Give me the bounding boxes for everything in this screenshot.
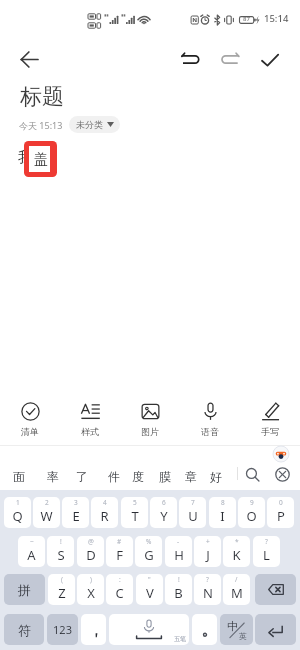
staticText: : — [119, 575, 121, 584]
staticText: D — [86, 546, 96, 564]
button[interactable]: ? — [194, 574, 221, 605]
staticText: @ — [88, 537, 94, 546]
button[interactable]: 度 — [125, 463, 151, 489]
staticText: ? — [206, 575, 209, 584]
button[interactable]: ) — [77, 574, 104, 605]
button[interactable]: 2 — [33, 497, 60, 528]
staticText: C — [115, 584, 124, 602]
staticText: 6 — [162, 498, 166, 507]
staticText: 面 — [13, 469, 25, 484]
staticText: + — [206, 537, 210, 546]
button[interactable]: Close keyboard — [269, 461, 295, 487]
staticText: 样式 — [81, 426, 99, 437]
button[interactable]: 手写 — [240, 389, 300, 449]
button[interactable]: 3 — [62, 497, 89, 528]
staticText: 件 — [108, 469, 120, 484]
staticText: A — [27, 546, 36, 564]
staticText: 五笔 — [174, 635, 186, 643]
staticText: W — [40, 507, 53, 525]
staticText: M — [231, 584, 243, 602]
button[interactable]: ? — [253, 536, 280, 567]
button[interactable]: / — [223, 574, 250, 605]
button[interactable]: Comma — [81, 614, 106, 645]
staticText: 手写 — [261, 426, 279, 437]
staticText: 今天 15:13 — [19, 119, 63, 131]
staticText: 2 — [45, 498, 49, 507]
button[interactable]: Enter — [255, 614, 296, 645]
button[interactable]: Period — [192, 614, 217, 645]
button[interactable]: # — [106, 536, 133, 567]
button[interactable]: 7 — [179, 497, 206, 528]
button[interactable]: 8 — [209, 497, 236, 528]
button[interactable]: Space — [109, 614, 189, 645]
button[interactable]: - — [165, 536, 192, 567]
staticText: 我 — [18, 148, 33, 167]
button[interactable]: 0 — [267, 497, 294, 528]
button[interactable]: ! — [165, 574, 192, 605]
staticText: 率 — [47, 469, 59, 484]
button[interactable]: 件 — [101, 463, 127, 489]
staticText: 4 — [103, 498, 107, 507]
staticText: H — [174, 546, 184, 564]
staticText: R — [100, 507, 109, 525]
staticText: # — [117, 537, 122, 546]
button[interactable]: 语音 — [180, 389, 240, 449]
button[interactable]: 123 — [47, 614, 78, 645]
button[interactable]: ! — [47, 536, 74, 567]
staticText: ( — [61, 575, 63, 584]
staticText: 标题 — [20, 83, 64, 111]
staticText: 语音 — [201, 426, 219, 437]
button[interactable]: Search — [239, 461, 265, 487]
staticText: G — [144, 546, 154, 564]
button[interactable]: Undo — [172, 41, 208, 77]
staticText: V — [146, 584, 154, 602]
staticText: 0 — [279, 498, 283, 507]
button[interactable]: 拼 — [4, 574, 45, 605]
button[interactable]: % — [135, 536, 162, 567]
button[interactable]: Back — [11, 41, 48, 78]
staticText: L — [263, 546, 270, 564]
button[interactable]: 了 — [69, 463, 95, 489]
staticText: J — [206, 546, 210, 564]
button[interactable]: 样式 — [60, 389, 120, 449]
staticText: 章 — [185, 469, 197, 484]
button[interactable]: 膜 — [152, 463, 178, 489]
button[interactable]: 盖 — [24, 141, 57, 177]
button[interactable]: ~ — [18, 536, 45, 567]
button[interactable]: 未分类 — [69, 116, 120, 133]
staticText: " — [148, 575, 151, 584]
staticText: 盖 — [34, 151, 48, 169]
button[interactable]: 清单 — [0, 389, 60, 449]
button[interactable]: 6 — [150, 497, 177, 528]
staticText: 5 — [133, 498, 137, 507]
button[interactable]: : — [106, 574, 133, 605]
button[interactable]: 5 — [121, 497, 148, 528]
button[interactable]: 4 — [91, 497, 118, 528]
button[interactable]: 图片 — [120, 389, 180, 449]
button[interactable]: Switch Chinese English — [220, 614, 253, 645]
button[interactable]: " — [136, 574, 163, 605]
button[interactable]: 1 — [4, 497, 31, 528]
staticText: S — [57, 546, 65, 564]
button[interactable]: Redo — [212, 41, 248, 77]
button[interactable]: * — [223, 536, 250, 567]
staticText: ) — [90, 575, 92, 584]
button[interactable]: 率 — [40, 463, 66, 489]
staticText: 符 — [18, 622, 31, 638]
button[interactable]: 符 — [4, 614, 44, 645]
button[interactable]: 好 — [203, 463, 229, 489]
staticText: 3 — [74, 498, 78, 507]
button[interactable]: @ — [77, 536, 104, 567]
button[interactable]: ( — [48, 574, 75, 605]
staticText: ? — [265, 537, 268, 546]
staticText: U — [188, 507, 198, 525]
button[interactable]: Backspace — [255, 574, 296, 605]
staticText: 15:14 — [264, 12, 289, 25]
button[interactable]: 9 — [238, 497, 265, 528]
staticText: 好 — [210, 469, 222, 484]
button[interactable]: Done — [252, 41, 288, 77]
button[interactable]: 面 — [6, 463, 32, 489]
staticText: 中 — [227, 619, 238, 633]
button[interactable]: 章 — [178, 463, 204, 489]
button[interactable]: + — [194, 536, 221, 567]
